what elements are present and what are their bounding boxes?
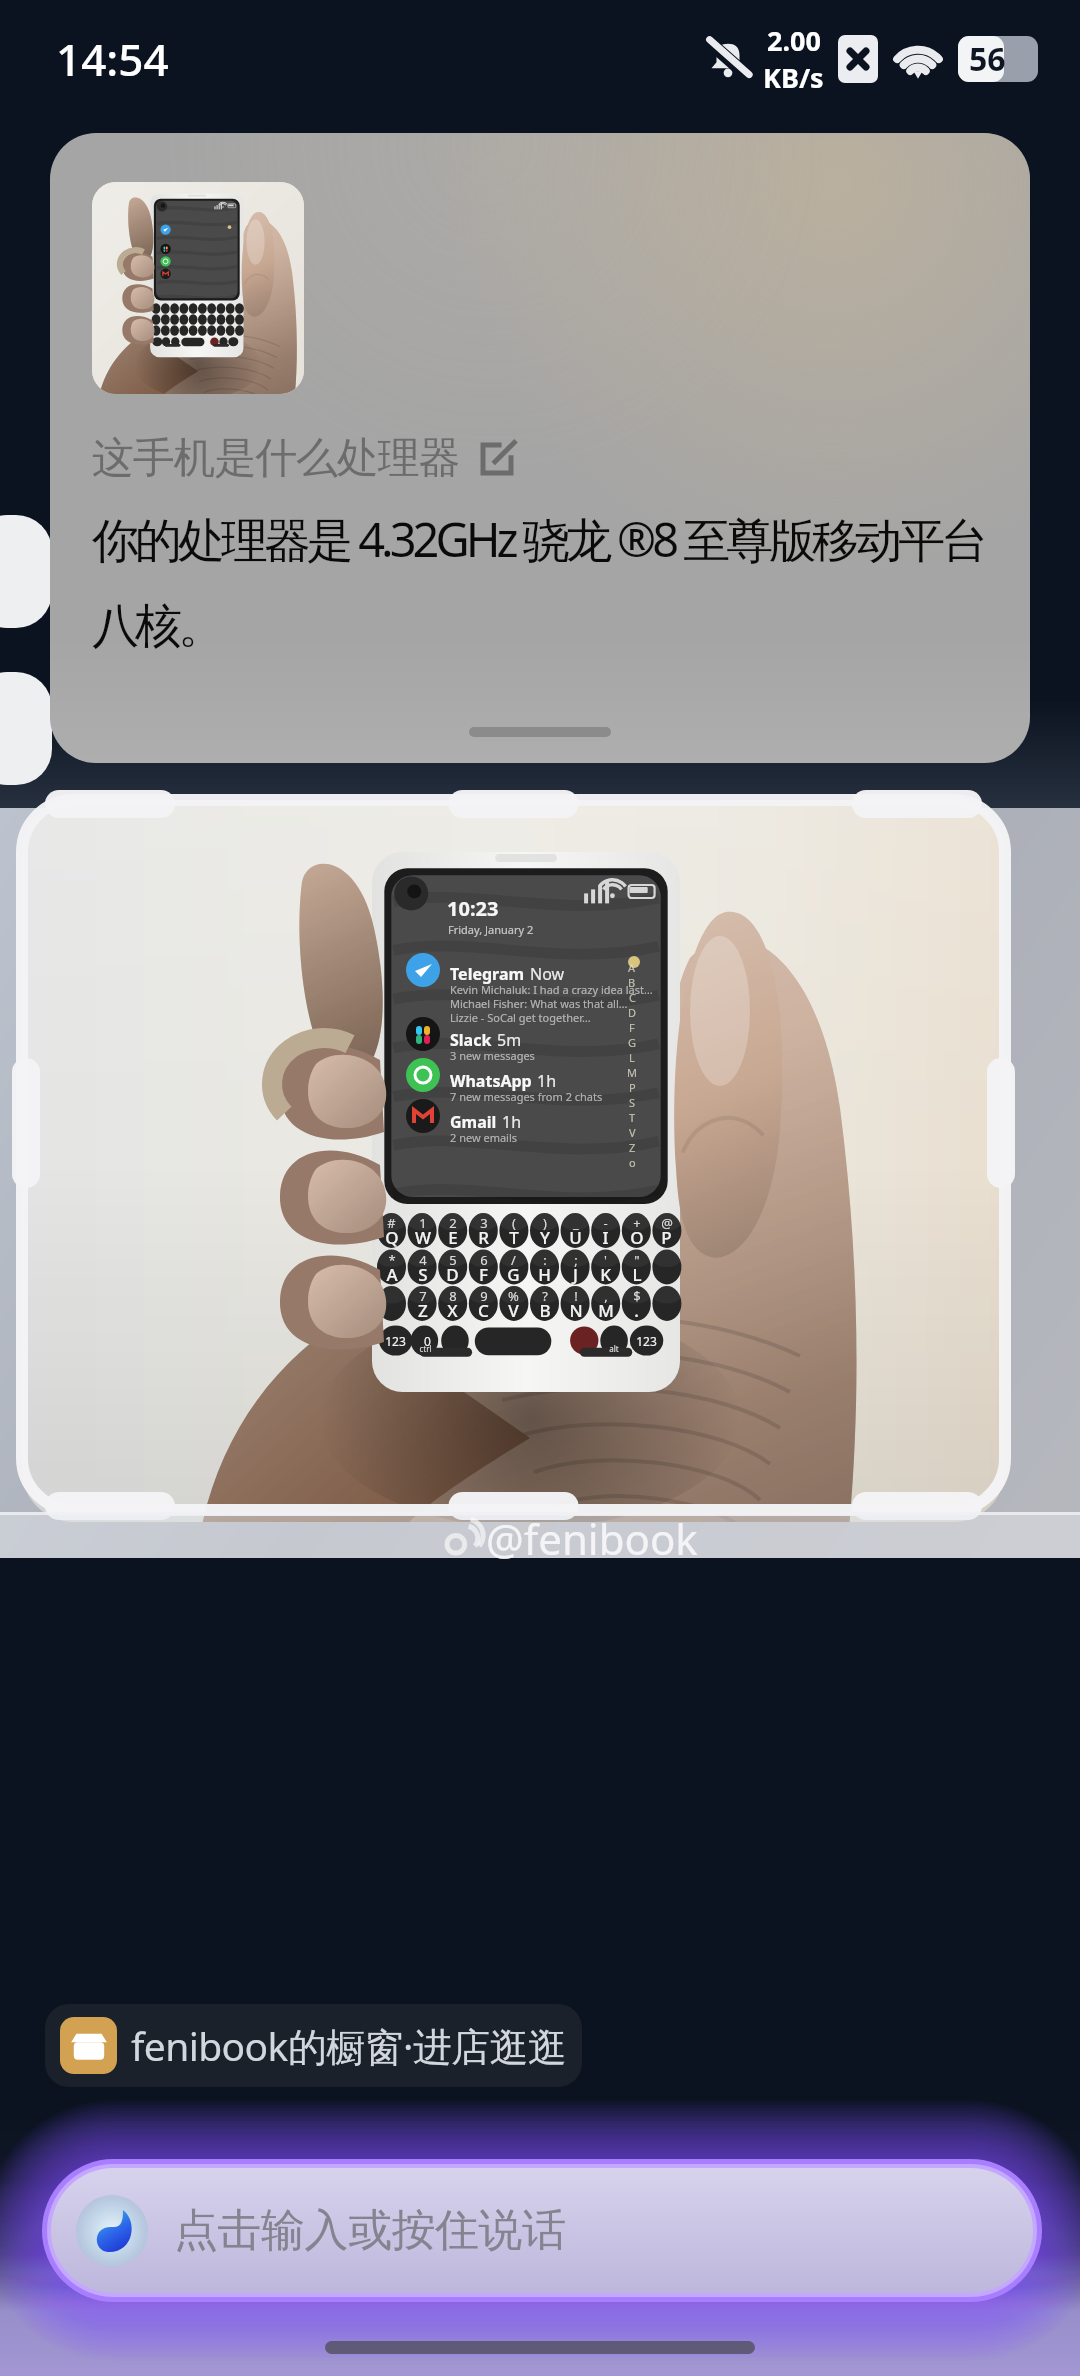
staticText: 这手机是什么处理器	[92, 432, 460, 485]
staticText: ,	[604, 1287, 608, 1305]
staticText: G	[628, 1035, 637, 1050]
staticText: C	[478, 1299, 489, 1322]
staticText: F	[479, 1263, 488, 1286]
staticText: H	[538, 1263, 551, 1286]
staticText: O	[630, 1226, 644, 1249]
staticText: L	[629, 1050, 635, 1065]
staticText: S	[629, 1095, 636, 1110]
staticText: C	[629, 990, 636, 1005]
staticText: 9	[480, 1287, 488, 1305]
staticText: X	[447, 1299, 458, 1322]
staticText: .	[634, 1299, 639, 1322]
staticText: D	[446, 1263, 459, 1286]
staticText: 2.00	[767, 22, 821, 59]
staticText: 点击输入或按住说话	[174, 2203, 566, 2258]
staticText: 3	[480, 1214, 488, 1232]
staticText: 56	[969, 37, 1006, 81]
staticText: ?	[542, 1287, 548, 1305]
staticText: ctrl	[419, 1343, 432, 1354]
staticText: P	[629, 1080, 636, 1095]
staticText: #	[387, 1214, 396, 1232]
staticText: 1h	[502, 1111, 522, 1133]
staticText: 10:23	[447, 895, 499, 922]
staticText: 4	[419, 1251, 427, 1269]
staticText: M	[598, 1299, 614, 1322]
staticText: T	[509, 1226, 519, 1249]
staticText: "	[634, 1251, 640, 1269]
staticText: Now	[530, 963, 565, 985]
staticText: o	[629, 1155, 636, 1170]
staticText: V	[508, 1299, 519, 1322]
staticText: 1	[419, 1214, 427, 1232]
staticText: -	[603, 1214, 608, 1232]
staticText: %	[508, 1287, 519, 1305]
staticText: A	[628, 960, 636, 975]
staticText: ;	[574, 1251, 578, 1269]
staticText: @fenibook	[486, 1510, 698, 1567]
button[interactable]: 这手机是什么处理器	[50, 133, 1030, 763]
staticText: 0	[424, 1333, 431, 1349]
staticText: 2	[449, 1214, 457, 1232]
staticText: Z	[629, 1140, 636, 1155]
staticText: 8	[449, 1287, 457, 1305]
staticText: G	[507, 1263, 520, 1286]
staticText: V	[629, 1125, 636, 1140]
staticText: @	[661, 1214, 673, 1232]
staticText: Friday, January 2	[448, 922, 534, 937]
staticText: 你的处理器是 4.32GHz 骁龙 ®8 至尊版移动平台 八核。	[92, 507, 985, 656]
staticText: :	[543, 1251, 547, 1269]
button[interactable]: Q	[0, 808, 1080, 1558]
staticText: Lizzie - SoCal get together…	[450, 1010, 591, 1025]
staticText: K	[600, 1263, 611, 1286]
staticText: Slack	[450, 1029, 492, 1051]
staticText: 5m	[497, 1029, 522, 1051]
button[interactable]: Next answer	[0, 672, 52, 785]
staticText: 6	[480, 1251, 488, 1269]
button[interactable]: 点击输入或按住说话	[51, 2168, 1033, 2293]
staticText: Gmail	[450, 1111, 497, 1133]
staticText: B	[539, 1299, 551, 1322]
staticText: L	[632, 1263, 642, 1286]
staticText: 14:54	[56, 29, 169, 89]
staticText: W	[415, 1226, 431, 1249]
staticText: $	[633, 1287, 641, 1305]
staticText: P	[661, 1226, 672, 1249]
staticText: T	[629, 1110, 636, 1125]
staticText: KB/s	[763, 59, 824, 96]
staticText: 3 new messages	[450, 1048, 535, 1063]
staticText: J	[573, 1263, 578, 1286]
staticText: Michael Fisher: What was that all…	[450, 996, 628, 1011]
staticText: E	[448, 1226, 458, 1249]
staticText: !	[574, 1287, 578, 1305]
staticText: 1h	[537, 1070, 557, 1092]
staticText: U	[569, 1226, 582, 1249]
staticText: _	[573, 1214, 579, 1232]
staticText: 123	[385, 1333, 406, 1349]
staticText: A	[386, 1263, 398, 1286]
staticText: I	[602, 1226, 609, 1249]
staticText: fenibook的橱窗·进店逛逛	[131, 2019, 567, 2072]
staticText: '	[604, 1251, 607, 1269]
staticText: 2 new emails	[450, 1130, 518, 1145]
staticText: Telegram	[450, 963, 525, 985]
staticText: 123	[636, 1333, 657, 1349]
staticText: +	[633, 1214, 641, 1232]
staticText: /	[511, 1251, 516, 1269]
staticText: (	[512, 1214, 516, 1232]
staticText: Kevin Michaluk: I had a crazy idea last…	[450, 982, 653, 997]
staticText: 7	[419, 1287, 427, 1305]
staticText: 5	[449, 1251, 457, 1269]
button[interactable]: fenibook的橱窗·进店逛逛	[45, 2004, 582, 2087]
staticText: )	[543, 1214, 547, 1232]
button[interactable]: Previous answer	[0, 515, 52, 628]
staticText: Y	[540, 1226, 550, 1249]
staticText: D	[628, 1005, 637, 1020]
staticText: 7 new messages from 2 chats	[450, 1089, 603, 1104]
staticText: B	[628, 975, 636, 990]
staticText: WhatsApp	[450, 1070, 532, 1092]
staticText: R	[478, 1226, 489, 1249]
staticText: Z	[418, 1299, 428, 1322]
staticText: N	[569, 1299, 583, 1322]
staticText: *	[388, 1251, 396, 1269]
staticText: M	[627, 1065, 637, 1080]
